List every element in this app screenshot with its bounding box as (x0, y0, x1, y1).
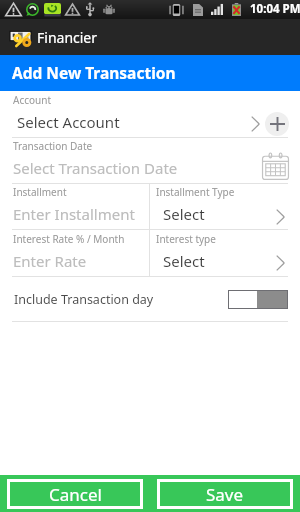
staticText: Save (206, 483, 244, 506)
button[interactable]: Account (0, 91, 300, 137)
staticText: Select Transaction Date (13, 158, 178, 178)
staticText: Interest Rate % / Month (13, 232, 125, 246)
staticText: Installment (13, 185, 67, 199)
button[interactable]: Pick date (262, 156, 289, 183)
button[interactable]: Interest type (150, 230, 300, 276)
staticText: Installment Type (156, 185, 235, 199)
button[interactable]: Include Transaction day (0, 277, 300, 321)
button[interactable]: Add account (265, 112, 289, 136)
staticText: Select (163, 204, 205, 224)
staticText: Select (163, 251, 205, 271)
staticText: Add New Transaction (12, 62, 176, 83)
button[interactable]: Save (157, 479, 293, 509)
button[interactable]: Cancel (7, 479, 143, 509)
staticText: Enter Installment (13, 204, 135, 224)
staticText: Select Account (17, 112, 120, 132)
button[interactable]: Installment (0, 184, 149, 229)
button[interactable]: Transaction Date (0, 138, 300, 183)
staticText: Enter Rate (13, 251, 87, 271)
staticText: 10:04 PM (250, 1, 300, 17)
button[interactable]: Interest Rate % / Month (0, 230, 149, 276)
staticText: Transaction Date (13, 139, 93, 153)
staticText: Account (13, 93, 52, 107)
staticText: Financier (37, 28, 98, 47)
staticText: Cancel (49, 483, 102, 506)
button[interactable]: Installment Type (150, 184, 300, 229)
staticText: Interest type (156, 232, 216, 246)
staticText: Include Transaction day (14, 291, 228, 308)
